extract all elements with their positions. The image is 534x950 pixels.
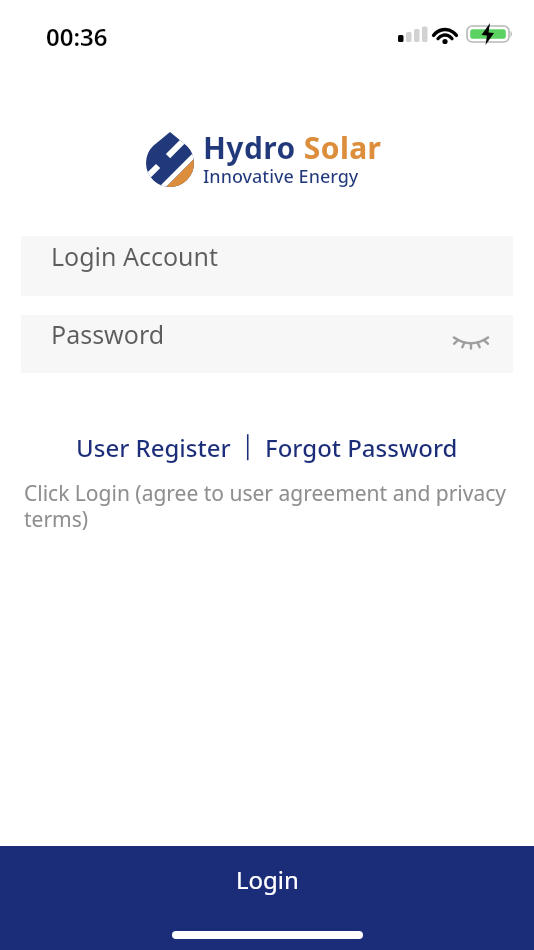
staticText: Login Account <box>51 239 219 273</box>
button[interactable]: Password <box>21 315 513 373</box>
staticText: Hydro Solar <box>203 127 382 168</box>
staticText: 00:36 <box>46 20 108 53</box>
staticText: Login <box>236 863 299 896</box>
staticText: Password <box>51 317 165 351</box>
button[interactable]: Login Account <box>21 236 513 296</box>
button[interactable]: User Register <box>76 431 231 464</box>
staticText: Forgot Password <box>265 431 458 464</box>
button[interactable]: Forgot Password <box>265 431 458 464</box>
staticText: User Register <box>76 431 231 464</box>
staticText: │ <box>241 435 255 461</box>
staticText: Click Login (agree to user agreement and… <box>24 479 507 533</box>
staticText: Innovative Energy <box>203 164 359 189</box>
button[interactable]: Login <box>0 846 534 950</box>
